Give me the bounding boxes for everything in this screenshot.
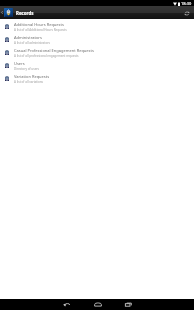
- staticText: A list of all administrators: [14, 41, 50, 45]
- staticText: Additional Hours Requests: [14, 22, 64, 27]
- button[interactable]: Recent apps: [113, 299, 144, 310]
- button[interactable]: Back: [51, 299, 82, 310]
- button[interactable]: Refresh: [180, 6, 194, 19]
- staticText: Variation Requests: [14, 74, 50, 79]
- button[interactable]: Navigate up: [0, 6, 4, 19]
- button[interactable]: Users: [0, 59, 194, 72]
- staticText: A list of all variations: [14, 80, 44, 84]
- staticText: A list of all Additional Hours Requests: [14, 28, 67, 32]
- staticText: Directory of users: [14, 67, 40, 71]
- staticText: 18:30: [181, 1, 192, 6]
- staticText: Records: [16, 10, 34, 16]
- staticText: A list of all professional engagement re…: [14, 54, 79, 58]
- button[interactable]: Additional Hours Requests: [0, 20, 194, 33]
- staticText: Administrators: [14, 35, 42, 40]
- button[interactable]: Home: [82, 299, 113, 310]
- staticText: Users: [14, 61, 25, 66]
- staticText: Casual Professional Engagement Requests: [14, 48, 94, 53]
- button[interactable]: Variation Requests: [0, 72, 194, 85]
- button[interactable]: Casual Professional Engagement Requests: [0, 46, 194, 59]
- button[interactable]: Administrators: [0, 33, 194, 46]
